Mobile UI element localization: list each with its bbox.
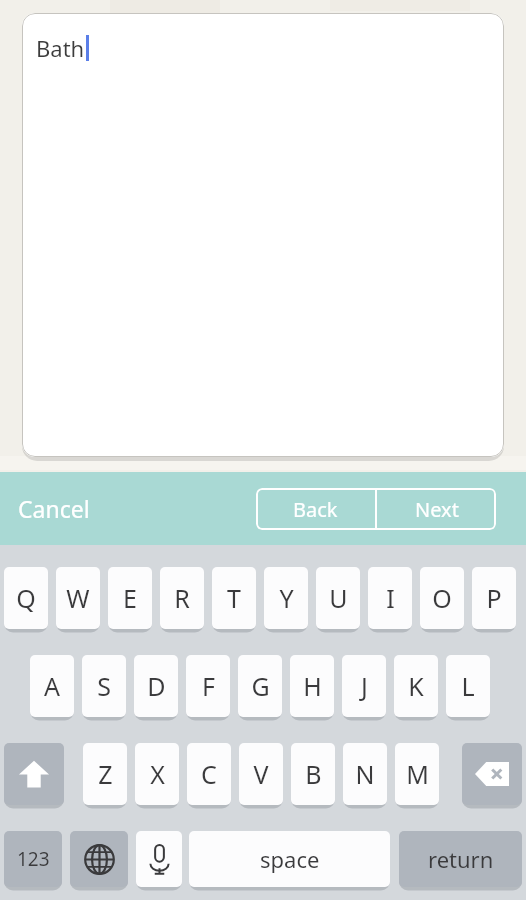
button[interactable]: A	[30, 655, 74, 717]
button[interactable]: Z	[83, 743, 127, 805]
button[interactable]: N	[343, 743, 387, 805]
staticText: K	[408, 669, 424, 703]
button[interactable]: space	[189, 831, 390, 887]
button[interactable]: C	[187, 743, 231, 805]
button[interactable]: Y	[264, 567, 308, 629]
button[interactable]: 123	[4, 831, 62, 887]
button[interactable]: D	[134, 655, 178, 717]
staticText: O	[432, 581, 452, 615]
staticText: C	[201, 757, 217, 791]
button[interactable]: G	[238, 655, 282, 717]
staticText: Back	[293, 496, 338, 523]
staticText: R	[174, 581, 190, 615]
button[interactable]: F	[186, 655, 230, 717]
button[interactable]: Cancel	[10, 487, 98, 530]
staticText: Next	[415, 496, 459, 523]
staticText: I	[386, 581, 395, 615]
button[interactable]: J	[342, 655, 386, 717]
staticText: return	[428, 844, 494, 874]
button[interactable]: V	[239, 743, 283, 805]
button[interactable]: Delete	[462, 743, 522, 805]
staticText: V	[253, 757, 269, 791]
staticText: X	[150, 757, 165, 791]
staticText: L	[461, 669, 475, 703]
staticText: A	[44, 669, 60, 703]
button[interactable]: I	[368, 567, 412, 629]
button[interactable]: O	[420, 567, 464, 629]
staticText: G	[251, 669, 270, 703]
staticText: P	[486, 581, 502, 615]
staticText: N	[355, 757, 375, 791]
staticText: 123	[17, 846, 50, 872]
button[interactable]: H	[290, 655, 334, 717]
button[interactable]: Q	[4, 567, 48, 629]
staticText: D	[147, 669, 166, 703]
staticText: M	[406, 757, 429, 791]
button[interactable]: Dictate	[136, 831, 182, 887]
staticText: Bath	[36, 33, 85, 63]
button[interactable]: Next	[377, 488, 496, 530]
button[interactable]: Switch keyboard	[70, 831, 128, 887]
button[interactable]: return	[399, 831, 522, 887]
staticText: S	[97, 669, 111, 703]
button[interactable]: M	[395, 743, 439, 805]
button[interactable]: R	[160, 567, 204, 629]
staticText: Cancel	[18, 493, 90, 524]
staticText: Y	[279, 581, 294, 615]
button[interactable]: S	[82, 655, 126, 717]
button[interactable]: T	[212, 567, 256, 629]
staticText: U	[329, 581, 348, 615]
button[interactable]: B	[291, 743, 335, 805]
staticText: Z	[98, 757, 113, 791]
button[interactable]: W	[56, 567, 100, 629]
button[interactable]: K	[394, 655, 438, 717]
staticText: B	[305, 757, 322, 791]
staticText: Q	[16, 581, 36, 615]
staticText: F	[202, 669, 215, 703]
staticText: W	[66, 581, 90, 615]
staticText: H	[303, 669, 322, 703]
staticText: J	[361, 669, 368, 703]
button[interactable]: Bath	[22, 13, 504, 457]
staticText: space	[260, 844, 320, 874]
staticText: E	[123, 581, 137, 615]
button[interactable]: Shift	[4, 743, 64, 805]
button[interactable]: X	[135, 743, 179, 805]
button[interactable]: P	[472, 567, 516, 629]
button[interactable]: U	[316, 567, 360, 629]
staticText: T	[227, 581, 241, 615]
button[interactable]: E	[108, 567, 152, 629]
button[interactable]: L	[446, 655, 490, 717]
button[interactable]: Back	[256, 488, 375, 530]
